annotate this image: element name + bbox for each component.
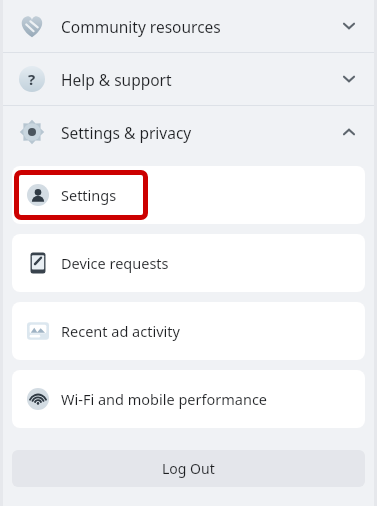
other: Expand section	[340, 70, 358, 88]
staticText: Wi-Fi and mobile performance	[61, 389, 268, 409]
other: Expand section	[340, 17, 358, 35]
button[interactable]: Recent ad activity	[12, 302, 365, 360]
staticText: Recent ad activity	[61, 321, 180, 341]
staticText: Settings	[61, 185, 117, 205]
button[interactable]: Settings	[12, 166, 365, 224]
button[interactable]: Log Out	[12, 450, 365, 487]
button[interactable]: Wi-Fi and mobile performance	[12, 370, 365, 428]
other: Collapse section	[340, 123, 358, 141]
staticText: Settings & privacy	[61, 122, 192, 143]
staticText: Device requests	[61, 253, 169, 273]
button[interactable]: Device requests	[12, 234, 365, 292]
staticText: Log Out	[162, 459, 215, 478]
staticText: Help & support	[61, 69, 172, 90]
button[interactable]: Community resources	[3, 0, 374, 52]
staticText: Community resources	[61, 16, 221, 37]
staticText: ?	[28, 69, 36, 89]
button[interactable]: ?	[3, 53, 374, 105]
button[interactable]: Settings & privacy	[3, 106, 374, 158]
